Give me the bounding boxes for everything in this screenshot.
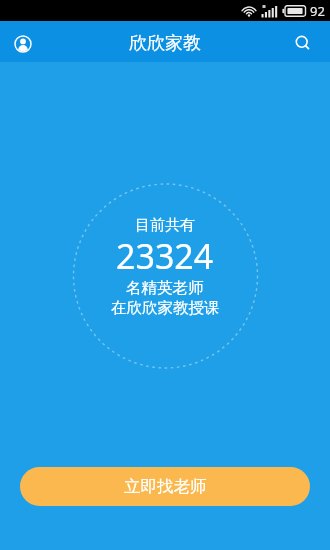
staticText: 立即找老师	[124, 476, 207, 497]
staticText: 23324	[116, 233, 214, 279]
staticText: 在欣欣家教授课	[111, 298, 220, 318]
staticText: 目前共有	[135, 216, 195, 235]
button[interactable]: 立即找老师	[20, 467, 310, 506]
staticText: 欣欣家教	[129, 32, 201, 55]
button[interactable]	[7, 26, 39, 58]
staticText: 92	[310, 2, 325, 20]
staticText: 名精英老师	[126, 278, 204, 298]
button[interactable]	[285, 26, 317, 58]
